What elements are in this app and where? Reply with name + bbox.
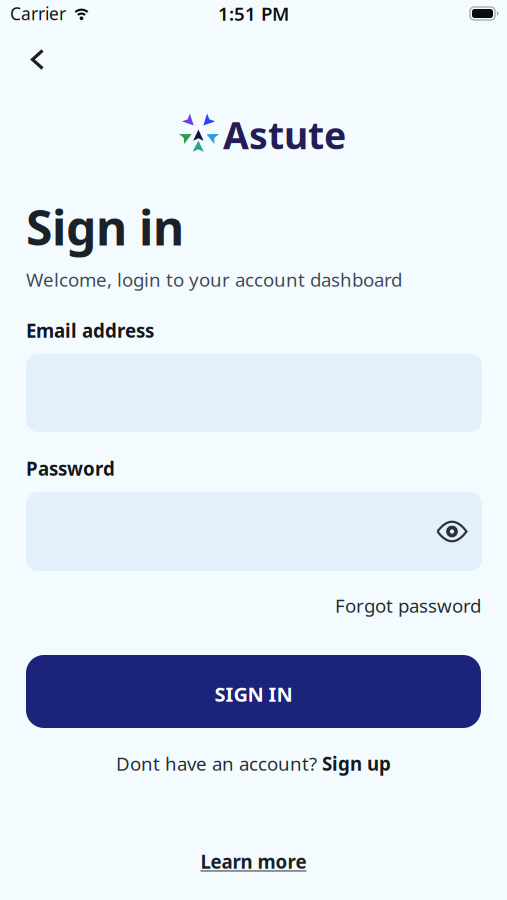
staticText: Email address [26, 318, 154, 343]
staticText: Carrier [10, 2, 66, 25]
staticText: Dont have an account? [116, 751, 322, 776]
button[interactable]: Forgot password [335, 593, 481, 618]
button[interactable]: SIGN IN [26, 655, 481, 728]
staticText: Forgot password [335, 593, 481, 618]
staticText: Password [26, 456, 115, 481]
staticText: SIGN IN [214, 681, 292, 707]
staticText: Welcome, login to your account dashboard [26, 267, 402, 292]
button[interactable] [18, 43, 58, 77]
button[interactable] [26, 492, 482, 571]
staticText: Learn more [200, 849, 306, 874]
button[interactable]: Sign up [322, 751, 391, 776]
staticText: Sign up [322, 751, 391, 776]
staticText: Astute [223, 110, 346, 160]
button[interactable]: Learn more [200, 849, 306, 874]
staticText: 1:51 PM [218, 1, 289, 26]
staticText: Sign in [26, 195, 184, 259]
